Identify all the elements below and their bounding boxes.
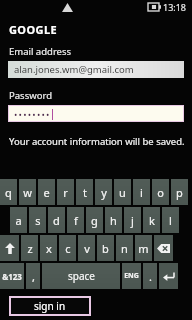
staticText: h — [110, 213, 117, 228]
button[interactable]: k — [143, 207, 160, 233]
button[interactable]: w — [19, 179, 36, 205]
staticText: w — [23, 185, 32, 200]
staticText: y — [101, 185, 107, 200]
staticText: q — [5, 185, 12, 200]
staticText: m — [138, 241, 149, 256]
button[interactable]: •••••••• — [8, 105, 184, 122]
staticText: z — [27, 241, 33, 256]
button[interactable]: alan.jones.wm@gmail.com — [8, 61, 184, 78]
button[interactable]: a — [10, 207, 27, 233]
staticText: g — [91, 213, 98, 228]
staticText: j — [131, 213, 134, 228]
staticText: GOOGLE — [9, 22, 58, 37]
staticText: Email address — [9, 45, 72, 58]
button[interactable]: Backspace — [154, 235, 173, 261]
staticText: &123 — [2, 271, 22, 282]
staticText: u — [119, 185, 126, 200]
button[interactable]: h — [105, 207, 122, 233]
button[interactable]: y — [95, 179, 112, 205]
staticText: v — [84, 241, 90, 256]
staticText: 13:18 — [163, 1, 187, 13]
staticText: •••••••• — [14, 108, 51, 120]
staticText: , — [32, 269, 35, 284]
staticText: a — [15, 213, 22, 228]
staticText: space — [68, 269, 95, 283]
button[interactable]: n — [116, 235, 133, 261]
button[interactable]: Enter — [159, 263, 178, 289]
button[interactable]: m — [135, 235, 152, 261]
button[interactable]: r — [57, 179, 74, 205]
staticText: x — [46, 241, 52, 256]
staticText: l — [169, 213, 172, 228]
button[interactable]: t — [76, 179, 93, 205]
button[interactable]: &123 — [0, 263, 24, 289]
button[interactable]: x — [40, 235, 57, 261]
staticText: alan.jones.wm@gmail.com — [14, 63, 134, 76]
button[interactable]: q — [0, 179, 17, 205]
button[interactable]: d — [48, 207, 65, 233]
button[interactable]: b — [97, 235, 114, 261]
staticText: c — [65, 241, 71, 256]
staticText: k — [149, 213, 155, 228]
staticText: Your account information will be saved. — [9, 135, 185, 148]
staticText: . — [149, 269, 152, 284]
staticText: b — [102, 241, 109, 256]
staticText: p — [176, 185, 183, 200]
button[interactable]: f — [67, 207, 84, 233]
staticText: Password — [9, 89, 52, 102]
staticText: d — [53, 213, 60, 228]
staticText: f — [74, 213, 78, 228]
button[interactable]: ENG — [122, 263, 141, 289]
button[interactable]: o — [152, 179, 169, 205]
button[interactable]: g — [86, 207, 103, 233]
button[interactable]: l — [162, 207, 179, 233]
button[interactable]: u — [114, 179, 131, 205]
button[interactable]: sign in — [9, 296, 91, 316]
staticText: t — [83, 185, 87, 200]
button[interactable]: c — [59, 235, 76, 261]
button[interactable]: p — [171, 179, 188, 205]
button[interactable]: e — [38, 179, 55, 205]
staticText: s — [35, 213, 41, 228]
button[interactable]: s — [29, 207, 46, 233]
staticText: r — [63, 185, 68, 200]
staticText: n — [121, 241, 128, 256]
staticText: e — [43, 185, 50, 200]
button[interactable]: j — [124, 207, 141, 233]
staticText: i — [140, 185, 143, 200]
button[interactable]: Shift — [0, 235, 19, 261]
button[interactable]: v — [78, 235, 95, 261]
staticText: sign in — [34, 299, 66, 313]
button[interactable]: , — [26, 263, 40, 289]
button[interactable]: . — [143, 263, 157, 289]
staticText: ENG — [124, 271, 139, 281]
staticText: o — [157, 185, 164, 200]
button[interactable]: i — [133, 179, 150, 205]
button[interactable]: space — [42, 263, 120, 289]
button[interactable]: z — [21, 235, 38, 261]
